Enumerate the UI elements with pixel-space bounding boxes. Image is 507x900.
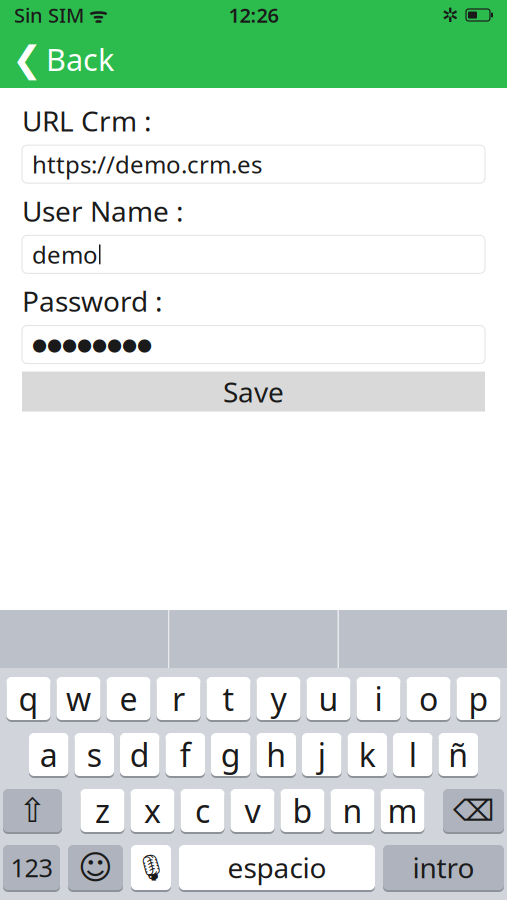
staticText: a — [40, 733, 58, 776]
staticText: j — [318, 733, 326, 776]
button[interactable]: q — [6, 677, 50, 722]
staticText: ●●●●●●●● — [32, 335, 152, 354]
staticText: v — [244, 789, 260, 832]
button[interactable]: l — [393, 733, 432, 778]
staticText: w — [66, 677, 91, 720]
button[interactable]: b — [280, 789, 324, 834]
staticText: l — [409, 733, 417, 776]
staticText: i — [374, 677, 382, 720]
staticText: 12:26 — [228, 2, 278, 28]
staticText: ✲ — [442, 4, 459, 26]
button[interactable]: s — [74, 733, 114, 778]
button[interactable]: r — [156, 677, 200, 722]
staticText: q — [18, 677, 38, 720]
staticText: m — [387, 789, 417, 832]
staticText: o — [419, 677, 438, 720]
button[interactable]: a — [29, 733, 68, 778]
staticText: k — [359, 733, 376, 776]
button[interactable]: Shift — [3, 789, 62, 834]
button[interactable]: Space — [179, 845, 375, 892]
staticText: 123 — [10, 851, 52, 884]
button[interactable]: Numbers — [3, 845, 60, 892]
staticText: z — [95, 789, 110, 832]
staticText: demo — [32, 238, 98, 270]
staticText: ❮ — [12, 39, 42, 79]
button[interactable]: g — [211, 733, 250, 778]
staticText: 🎙 — [135, 853, 167, 882]
button[interactable]: y — [256, 677, 300, 722]
button[interactable]: ❮ — [0, 31, 114, 87]
button[interactable]: Emoji — [68, 845, 123, 892]
button[interactable]: n — [330, 789, 374, 834]
staticText: x — [144, 789, 161, 832]
staticText: ☺ — [78, 849, 113, 886]
staticText: p — [468, 677, 488, 720]
button[interactable]: f — [165, 733, 205, 778]
staticText: r — [172, 677, 185, 720]
button[interactable]: Save — [22, 371, 485, 411]
staticText: y — [270, 677, 286, 720]
staticText: User Name : — [22, 192, 184, 229]
button[interactable]: e — [106, 677, 150, 722]
staticText: t — [222, 677, 234, 720]
staticText: Save — [223, 373, 284, 410]
button[interactable]: t — [206, 677, 250, 722]
button[interactable]: x — [130, 789, 174, 834]
staticText: https://demo.crm.es — [32, 148, 262, 180]
staticText: s — [87, 733, 102, 776]
button[interactable]: ñ — [438, 733, 478, 778]
staticText: Back — [46, 39, 114, 79]
staticText: u — [318, 677, 338, 720]
button[interactable]: o — [406, 677, 450, 722]
staticText: n — [342, 789, 362, 832]
staticText: Sin SIM — [14, 2, 84, 28]
staticText: espacio — [227, 849, 326, 886]
button[interactable]: Return — [383, 845, 504, 892]
button[interactable]: m — [380, 789, 424, 834]
button[interactable]: Dictate — [131, 845, 171, 892]
button[interactable]: z — [80, 789, 124, 834]
button[interactable]: c — [180, 789, 224, 834]
button[interactable]: Delete — [443, 789, 504, 834]
button[interactable]: k — [347, 733, 387, 778]
staticText: ⇧ — [18, 792, 46, 829]
button[interactable]: d — [120, 733, 159, 778]
staticText: d — [130, 733, 150, 776]
staticText: intro — [412, 849, 474, 886]
staticText: ⌫ — [453, 794, 494, 827]
button[interactable]: i — [356, 677, 400, 722]
staticText: ñ — [448, 733, 468, 776]
staticText: Password : — [22, 282, 163, 320]
staticText: b — [292, 789, 312, 832]
staticText: c — [195, 789, 210, 832]
button[interactable]: v — [230, 789, 274, 834]
staticText: ᯤ — [84, 2, 107, 28]
staticText: h — [266, 733, 286, 776]
staticText: g — [221, 733, 241, 776]
button[interactable]: w — [56, 677, 100, 722]
staticText: URL Crm : — [22, 102, 152, 139]
staticText: f — [180, 733, 191, 776]
button[interactable]: u — [306, 677, 350, 722]
button[interactable]: p — [456, 677, 500, 722]
staticText: e — [119, 677, 137, 720]
button[interactable]: j — [302, 733, 341, 778]
button[interactable]: h — [256, 733, 296, 778]
